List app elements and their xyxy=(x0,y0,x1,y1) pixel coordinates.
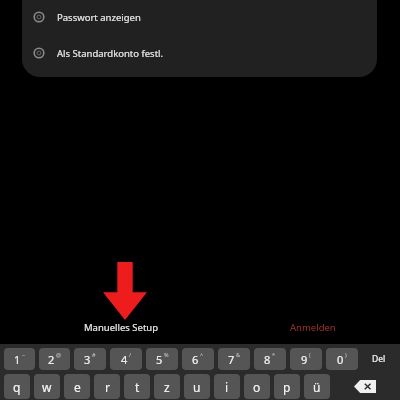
button[interactable]: 2 xyxy=(39,348,70,370)
button[interactable]: Passwort anzeigen xyxy=(22,7,377,27)
staticText: r xyxy=(105,379,110,395)
staticText: Del xyxy=(372,353,386,365)
staticText: ( xyxy=(309,351,311,358)
button[interactable]: 0 xyxy=(326,348,358,370)
staticText: i xyxy=(225,379,229,395)
button[interactable]: q xyxy=(4,374,30,399)
staticText: ) xyxy=(345,351,347,358)
staticText: / xyxy=(129,351,132,358)
staticText: p xyxy=(283,379,291,395)
staticText: 8 xyxy=(264,352,271,367)
button[interactable]: e xyxy=(64,374,90,399)
staticText: 5 xyxy=(156,352,163,367)
button[interactable]: w xyxy=(34,374,60,399)
button[interactable]: i xyxy=(214,374,240,399)
staticText: Als Standardkonto festl. xyxy=(57,47,164,60)
button[interactable]: Anmelden xyxy=(284,318,342,337)
button[interactable]: u xyxy=(184,374,210,399)
staticText: u xyxy=(193,379,201,395)
staticText: t xyxy=(135,379,140,395)
button[interactable]: 3 xyxy=(74,348,106,370)
staticText: w xyxy=(42,379,52,395)
staticText: 9 xyxy=(301,352,308,367)
button[interactable]: ü xyxy=(304,374,330,399)
staticText: 1 xyxy=(14,352,21,367)
button[interactable]: 8 xyxy=(254,348,286,370)
button[interactable]: z xyxy=(154,374,180,399)
button[interactable]: Del xyxy=(362,348,396,370)
button[interactable]: 4 xyxy=(110,348,142,370)
button[interactable]: Backspace xyxy=(334,374,396,399)
staticText: * xyxy=(272,351,276,358)
button[interactable]: Manuelles Setup xyxy=(78,318,165,337)
staticText: e xyxy=(74,379,81,395)
staticText: 2 xyxy=(48,352,55,367)
button[interactable]: 1 xyxy=(4,348,35,370)
button[interactable]: 9 xyxy=(290,348,322,370)
staticText: ~ xyxy=(22,351,26,358)
staticText: Manuelles Setup xyxy=(84,321,159,334)
staticText: & xyxy=(236,351,241,358)
staticText: # xyxy=(92,351,96,358)
staticText: o xyxy=(253,379,261,395)
other: Hinweis Pfeil xyxy=(103,262,147,320)
button[interactable]: o xyxy=(244,374,270,399)
staticText: Passwort anzeigen xyxy=(57,11,141,24)
button[interactable]: t xyxy=(124,374,150,399)
staticText: ^ xyxy=(200,351,204,358)
staticText: @ xyxy=(56,351,61,358)
staticText: 0 xyxy=(337,352,344,367)
staticText: Anmelden xyxy=(290,321,336,334)
button[interactable]: 6 xyxy=(182,348,214,370)
staticText: 4 xyxy=(121,352,128,367)
staticText: ü xyxy=(313,379,321,395)
staticText: 7 xyxy=(228,352,235,367)
staticText: % xyxy=(164,351,169,358)
button[interactable]: r xyxy=(94,374,120,399)
button[interactable]: Als Standardkonto festl. xyxy=(22,43,377,63)
staticText: z xyxy=(164,379,170,395)
button[interactable]: 5 xyxy=(146,348,178,370)
button[interactable]: 7 xyxy=(218,348,250,370)
staticText: 6 xyxy=(192,352,199,367)
staticText: 3 xyxy=(84,352,91,367)
button[interactable]: p xyxy=(274,374,300,399)
staticText: q xyxy=(13,379,21,395)
